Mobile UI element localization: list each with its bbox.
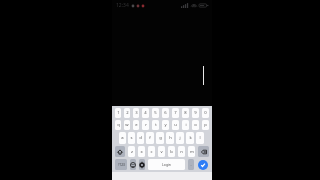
button[interactable]: t	[152, 120, 159, 130]
staticText: p	[204, 122, 207, 128]
button[interactable]: c	[148, 146, 155, 157]
button[interactable]: z	[128, 146, 135, 157]
staticText: g	[159, 135, 162, 141]
button[interactable]: j	[176, 132, 184, 144]
button[interactable]: ?123	[115, 159, 127, 170]
staticText: v	[160, 149, 163, 155]
staticText: 4	[144, 110, 147, 116]
staticText: x	[140, 149, 143, 155]
button[interactable]: 5	[152, 108, 159, 118]
button[interactable]: .	[188, 159, 194, 170]
staticText: ?123	[118, 163, 125, 167]
button[interactable]: r	[142, 120, 149, 130]
button[interactable]: d	[137, 132, 144, 144]
staticText: i	[185, 122, 187, 128]
staticText: m	[190, 149, 194, 155]
button[interactable]: Shift	[115, 146, 125, 157]
staticText: b	[170, 149, 173, 155]
button[interactable]: Backspace	[198, 146, 209, 157]
staticText: e	[135, 122, 138, 128]
staticText: 8	[184, 110, 187, 116]
staticText: 2	[126, 110, 129, 116]
staticText: 0	[204, 110, 207, 116]
staticText: h	[169, 135, 172, 141]
button[interactable]: 4	[142, 108, 149, 118]
button[interactable]: g	[156, 132, 164, 144]
staticText: d	[139, 135, 142, 141]
button[interactable]: p	[202, 120, 209, 130]
staticText: 12:34	[116, 2, 129, 9]
staticText: 5	[154, 110, 157, 116]
button[interactable]: o	[192, 120, 199, 130]
staticText: r	[145, 122, 147, 128]
button[interactable]: k	[186, 132, 194, 144]
button[interactable]: 6	[162, 108, 169, 118]
staticText: q	[117, 122, 120, 128]
button[interactable]: q	[115, 120, 121, 130]
staticText: k	[189, 135, 192, 141]
button[interactable]: m	[188, 146, 195, 157]
staticText: 7	[174, 110, 177, 116]
button[interactable]: s	[128, 132, 135, 144]
staticText: Login	[162, 162, 171, 167]
staticText: n	[180, 149, 183, 155]
staticText: w	[125, 122, 129, 128]
button[interactable]: Enter	[196, 159, 210, 170]
button[interactable]: y	[162, 120, 169, 130]
button[interactable]: Emoji	[130, 159, 136, 170]
staticText: y	[164, 122, 167, 128]
staticText: f	[149, 135, 151, 141]
staticText: 1	[117, 110, 120, 116]
button[interactable]: 0	[202, 108, 209, 118]
button[interactable]: n	[178, 146, 185, 157]
button[interactable]: 9	[192, 108, 199, 118]
staticText: 6	[164, 110, 167, 116]
button[interactable]: Settings	[139, 159, 145, 170]
button[interactable]: v	[158, 146, 165, 157]
button[interactable]: h	[166, 132, 174, 144]
button[interactable]: x	[138, 146, 145, 157]
button[interactable]: 2	[124, 108, 130, 118]
staticText: l	[199, 135, 201, 141]
button[interactable]: l	[196, 132, 204, 144]
staticText: 3	[135, 110, 138, 116]
staticText: a	[121, 135, 124, 141]
staticText: t	[155, 122, 157, 128]
button[interactable]: 7	[172, 108, 179, 118]
staticText: c	[150, 149, 153, 155]
button[interactable]: w	[124, 120, 130, 130]
button[interactable]: i	[182, 120, 189, 130]
button[interactable]: u	[172, 120, 179, 130]
staticText: u	[174, 122, 177, 128]
staticText: o	[194, 122, 197, 128]
staticText: j	[179, 135, 181, 141]
button[interactable]: f	[146, 132, 154, 144]
button[interactable]: 8	[182, 108, 189, 118]
staticText: 9	[194, 110, 197, 116]
staticText: s	[130, 135, 133, 141]
button[interactable]: b	[168, 146, 175, 157]
button[interactable]: a	[119, 132, 126, 144]
button[interactable]: Login	[148, 159, 185, 170]
button[interactable]: e	[133, 120, 139, 130]
button[interactable]: 1	[115, 108, 121, 118]
staticText: .	[190, 162, 192, 167]
staticText: z	[131, 149, 133, 155]
button[interactable]: 3	[133, 108, 139, 118]
